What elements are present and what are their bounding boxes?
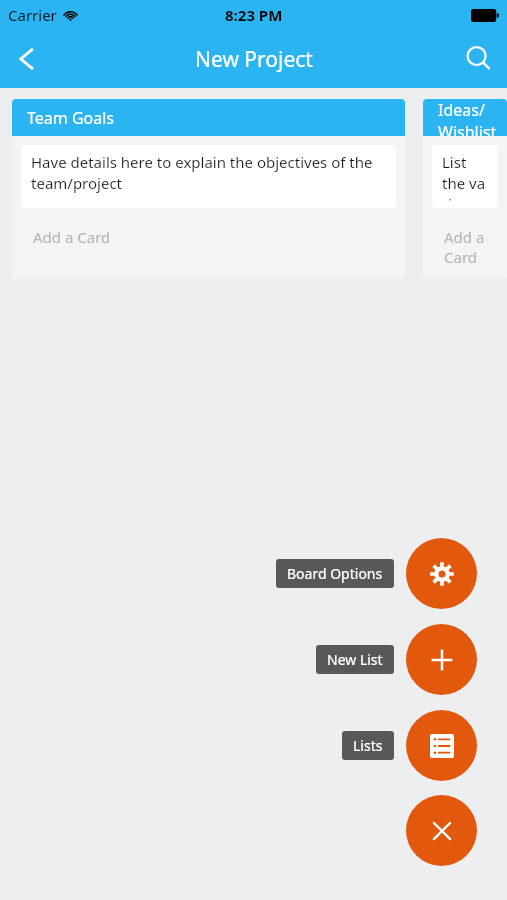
button[interactable]: Back: [0, 32, 54, 86]
button[interactable]: Search: [451, 31, 507, 87]
button[interactable]: Have details here to explain the objecti…: [21, 145, 396, 208]
button[interactable]: List the various ideas: [432, 145, 498, 208]
button[interactable]: New List: [406, 624, 477, 695]
staticText: Board Options: [287, 564, 383, 583]
staticText: 8:23 PM: [225, 5, 283, 25]
staticText: New List: [327, 650, 383, 669]
staticText: List the various ideas: [442, 152, 488, 201]
button[interactable]: Board Options: [276, 559, 394, 588]
button[interactable]: Ideas/Wishlist: [423, 99, 507, 278]
staticText: Team Goals: [27, 107, 114, 129]
button[interactable]: Lists: [342, 731, 394, 760]
staticText: Have details here to explain the objecti…: [31, 152, 386, 194]
staticText: New Project: [195, 45, 313, 74]
button[interactable]: Board Options: [406, 538, 477, 609]
staticText: Lists: [353, 736, 383, 755]
button[interactable]: Close: [406, 795, 477, 866]
button[interactable]: Team Goals: [12, 99, 405, 278]
button[interactable]: New List: [316, 645, 394, 674]
staticText: Carrier: [8, 5, 57, 25]
button[interactable]: Lists: [406, 710, 477, 781]
staticText: Add a Card: [33, 227, 111, 247]
staticText: Ideas/Wishlist: [438, 99, 507, 136]
staticText: Add a Card: [444, 227, 507, 267]
